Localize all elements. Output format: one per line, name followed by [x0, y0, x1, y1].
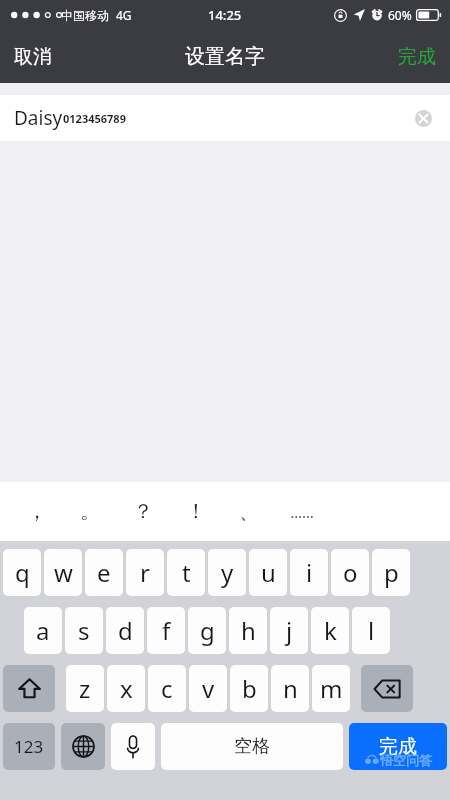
- staticText: x: [120, 672, 133, 705]
- button[interactable]: d: [106, 607, 144, 654]
- button[interactable]: 123: [3, 723, 55, 770]
- staticText: u: [261, 556, 276, 589]
- button[interactable]: i: [290, 549, 328, 596]
- staticText: q: [15, 556, 30, 589]
- button[interactable]: ，: [12, 482, 62, 541]
- staticText: y: [221, 556, 234, 589]
- button[interactable]: s: [65, 607, 103, 654]
- button[interactable]: Shift: [3, 665, 55, 712]
- staticText: 取消: [14, 45, 52, 69]
- button[interactable]: f: [147, 607, 185, 654]
- button[interactable]: y: [208, 549, 246, 596]
- staticText: ？: [133, 499, 153, 524]
- button[interactable]: e: [85, 549, 123, 596]
- button[interactable]: v: [189, 665, 227, 712]
- button[interactable]: h: [229, 607, 267, 654]
- button[interactable]: 空格: [161, 723, 343, 770]
- staticText: 14:25: [208, 6, 242, 24]
- staticText: d: [118, 614, 133, 647]
- button[interactable]: o: [331, 549, 369, 596]
- button[interactable]: j: [270, 607, 308, 654]
- staticText: 空格: [234, 735, 270, 758]
- staticText: ，: [27, 499, 47, 524]
- staticText: 完成: [398, 45, 436, 69]
- button[interactable]: w: [44, 549, 82, 596]
- staticText: k: [324, 614, 337, 647]
- button[interactable]: m: [312, 665, 350, 712]
- staticText: Daisy: [14, 105, 63, 131]
- staticText: 中国移动: [61, 8, 109, 23]
- button[interactable]: 完成: [384, 30, 450, 83]
- button[interactable]: c: [148, 665, 186, 712]
- button[interactable]: k: [311, 607, 349, 654]
- staticText: m: [320, 672, 343, 705]
- button[interactable]: l: [352, 607, 390, 654]
- staticText: 。: [80, 499, 100, 524]
- button[interactable]: p: [372, 549, 410, 596]
- staticText: 、: [239, 499, 259, 524]
- button[interactable]: r: [126, 549, 164, 596]
- staticText: 4G: [116, 7, 132, 23]
- staticText: s: [78, 614, 90, 647]
- staticText: 123: [14, 735, 44, 758]
- button[interactable]: Switch keyboard language: [61, 723, 105, 770]
- staticText: v: [202, 672, 215, 705]
- staticText: 0123456789: [63, 111, 126, 126]
- staticText: 60%: [388, 7, 412, 23]
- staticText: 完成: [379, 735, 417, 759]
- staticText: r: [140, 556, 150, 589]
- staticText: n: [283, 672, 298, 705]
- button[interactable]: x: [107, 665, 145, 712]
- button[interactable]: g: [188, 607, 226, 654]
- button[interactable]: 取消: [0, 30, 66, 83]
- button[interactable]: b: [230, 665, 268, 712]
- staticText: o: [343, 556, 358, 589]
- staticText: h: [241, 614, 256, 647]
- button[interactable]: a: [24, 607, 62, 654]
- button[interactable]: ？: [118, 482, 168, 541]
- staticText: e: [97, 556, 111, 589]
- button[interactable]: 完成: [349, 723, 447, 770]
- staticText: 设置名字: [185, 44, 265, 69]
- button[interactable]: t: [167, 549, 205, 596]
- staticText: p: [384, 556, 399, 589]
- staticText: t: [182, 556, 191, 589]
- button[interactable]: 、: [224, 482, 274, 541]
- button[interactable]: Clear text: [408, 103, 438, 133]
- button[interactable]: u: [249, 549, 287, 596]
- staticText: i: [306, 556, 313, 589]
- staticText: ……: [290, 502, 314, 522]
- button[interactable]: z: [66, 665, 104, 712]
- staticText: f: [162, 614, 171, 647]
- staticText: l: [368, 614, 375, 647]
- staticText: ！: [186, 499, 206, 524]
- button[interactable]: q: [3, 549, 41, 596]
- button[interactable]: Voice input: [111, 723, 155, 770]
- staticText: j: [286, 614, 293, 647]
- button[interactable]: ……: [277, 482, 327, 541]
- staticText: c: [161, 672, 173, 705]
- staticText: a: [36, 614, 50, 647]
- button[interactable]: Delete: [361, 665, 413, 712]
- staticText: z: [79, 672, 91, 705]
- button[interactable]: 。: [65, 482, 115, 541]
- staticText: 悟空问答: [380, 752, 432, 768]
- staticText: w: [54, 556, 73, 589]
- button[interactable]: Daisy: [0, 95, 450, 141]
- button[interactable]: n: [271, 665, 309, 712]
- staticText: b: [242, 672, 257, 705]
- staticText: g: [200, 614, 215, 647]
- button[interactable]: ！: [171, 482, 221, 541]
